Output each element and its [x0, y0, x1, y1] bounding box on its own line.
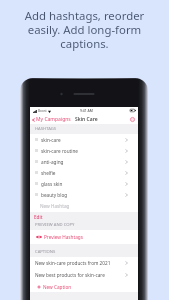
staticText: New Hashtag: [40, 203, 70, 209]
staticText: Skin Care: [75, 116, 98, 123]
staticText: HASHTAGS: [35, 126, 57, 132]
staticText: skin-care routine: [41, 148, 78, 154]
button[interactable]: skin-care routine: [30, 145, 138, 156]
staticText: New best products for skin-care: [35, 272, 105, 278]
staticText: glass skin: [41, 181, 63, 187]
staticText: My Campaigns: [36, 116, 71, 123]
button[interactable]: New Caption: [37, 281, 138, 292]
staticText: shelfie: [41, 170, 56, 176]
button[interactable]: skin-care: [30, 134, 138, 145]
button[interactable]: anti-aging: [30, 156, 138, 167]
staticText: Add hashtags, reorder easily. Add long-f…: [0, 8, 169, 52]
button[interactable]: Edit: [34, 214, 43, 220]
button[interactable]: New skin-care products from 2021: [30, 257, 138, 269]
staticText: PREVIEW AND COPY: [35, 222, 75, 228]
button[interactable]: My Campaigns: [30, 115, 72, 124]
button[interactable]: glass skin: [30, 178, 138, 189]
button[interactable]: New Hashtag: [40, 200, 138, 212]
button[interactable]: Preview Hashtags: [30, 230, 138, 244]
staticText: CAPTIONS: [35, 249, 56, 255]
button[interactable]: New best products for skin-care: [30, 269, 138, 281]
staticText: New skin-care products from 2021: [35, 260, 111, 266]
staticText: Boost: [38, 109, 47, 113]
button[interactable]: Campaign options: [129, 116, 136, 123]
staticText: 9:41 AM: [80, 108, 93, 113]
button[interactable]: shelfie: [30, 167, 138, 178]
staticText: skin-care: [41, 137, 61, 143]
staticText: New Caption: [43, 284, 72, 290]
staticText: anti-aging: [41, 159, 64, 165]
button[interactable]: beauty blog: [30, 189, 138, 200]
staticText: Preview Hashtags: [44, 234, 83, 240]
staticText: beauty blog: [41, 192, 68, 198]
